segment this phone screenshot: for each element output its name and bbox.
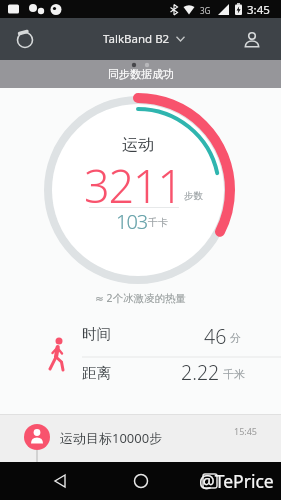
- button[interactable]: TalkBand B2: [103, 31, 185, 47]
- staticText: 103: [116, 208, 148, 235]
- button[interactable]: 同步数据成功: [0, 60, 281, 88]
- button[interactable]: [195, 466, 225, 496]
- button[interactable]: 运动目标10000步: [0, 414, 281, 462]
- staticText: 同步数据成功: [108, 67, 174, 81]
- staticText: 3G: [200, 5, 211, 16]
- button[interactable]: [0, 18, 42, 60]
- staticText: 15:45: [234, 425, 258, 437]
- staticText: 步数: [184, 190, 203, 202]
- button[interactable]: 时间: [0, 314, 281, 353]
- staticText: 2.22: [181, 359, 220, 386]
- staticText: @TePrice: [199, 469, 274, 493]
- staticText: 3211: [84, 155, 182, 216]
- button[interactable]: [239, 18, 281, 60]
- staticText: 运动目标10000步: [60, 429, 163, 447]
- staticText: 时间: [82, 325, 111, 343]
- button[interactable]: 距离: [0, 353, 281, 392]
- staticText: 运动: [122, 135, 154, 155]
- button[interactable]: [126, 466, 156, 496]
- staticText: 3:45: [247, 2, 270, 18]
- staticText: 分: [230, 331, 241, 345]
- staticText: 千米: [223, 367, 245, 381]
- button[interactable]: [45, 466, 75, 496]
- staticText: ≈ 2个冰激凌的热量: [95, 291, 187, 305]
- staticText: TalkBand B2: [103, 31, 170, 47]
- staticText: 46: [204, 323, 227, 350]
- staticText: 千卡: [148, 216, 168, 229]
- staticText: 距离: [82, 364, 111, 382]
